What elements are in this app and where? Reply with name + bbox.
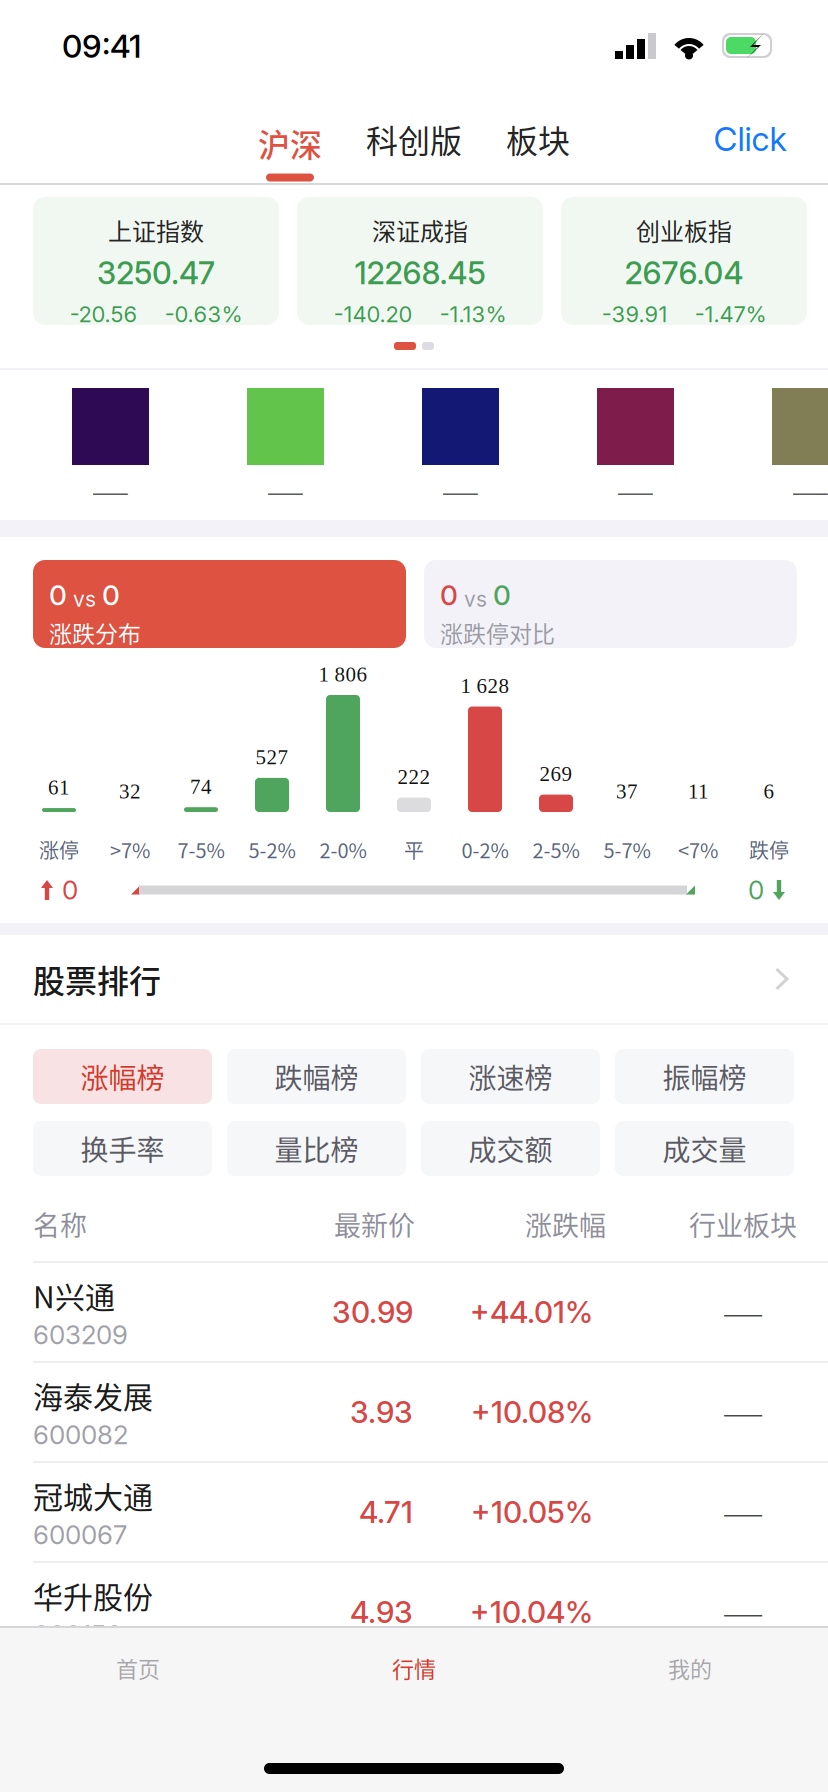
button[interactable]: 成交量	[615, 1121, 794, 1176]
staticText: ——	[442, 475, 479, 507]
staticText: 1 628	[460, 674, 509, 698]
staticText: +10.08%	[471, 1394, 593, 1430]
staticText: 涨速榜	[468, 1056, 552, 1097]
button[interactable]: 振幅榜	[615, 1049, 794, 1104]
staticText: 创业板指	[636, 213, 732, 247]
staticText: -39.91	[601, 301, 667, 327]
staticText: +10.05%	[471, 1494, 593, 1530]
button[interactable]: 沪深	[228, 96, 352, 189]
staticText: 成交量	[662, 1128, 746, 1169]
staticText: 30.99	[332, 1294, 413, 1330]
staticText: 37	[616, 780, 638, 803]
staticText: ——	[792, 475, 828, 507]
staticText: 华升股份	[33, 1574, 153, 1617]
staticText: 沪深	[258, 120, 322, 166]
staticText: 09:41	[62, 27, 142, 65]
staticText: 冠城大通	[33, 1474, 153, 1517]
staticText: 2-5%	[532, 835, 579, 864]
button[interactable]: N兴通	[0, 1263, 828, 1363]
button[interactable]: 换手率	[33, 1121, 212, 1176]
button[interactable]: 行情	[276, 1628, 552, 1708]
staticText: 股票排行	[33, 956, 161, 1002]
staticText: -1.13%	[439, 301, 506, 327]
staticText: -1.47%	[694, 301, 766, 327]
staticText: -20.56	[69, 301, 137, 327]
staticText: ——	[723, 1395, 763, 1429]
staticText: >7%	[110, 835, 150, 864]
staticText: 2676.04	[624, 254, 743, 292]
staticText: ——	[92, 475, 129, 507]
button[interactable]: ——	[422, 388, 499, 507]
staticText: vs	[67, 586, 102, 612]
button[interactable]: ——	[772, 388, 828, 507]
button[interactable]: 成交额	[421, 1121, 600, 1176]
button[interactable]: 华升股份	[0, 1563, 828, 1663]
staticText: 0-2%	[461, 835, 508, 864]
button[interactable]: 涨速榜	[421, 1049, 600, 1104]
button[interactable]: 上证指数	[33, 197, 279, 325]
staticText: 平	[404, 835, 424, 864]
button[interactable]: 海泰发展	[0, 1363, 828, 1463]
staticText: 涨幅榜	[80, 1056, 164, 1097]
staticText: 换手率	[80, 1128, 164, 1169]
staticText: -0.63%	[164, 301, 242, 327]
staticText: 2-0%	[319, 835, 366, 864]
staticText: 0	[49, 578, 67, 612]
button[interactable]: ——	[597, 388, 674, 507]
button[interactable]: 涨幅榜	[33, 1049, 212, 1104]
button[interactable]: 科创版	[352, 92, 476, 194]
staticText: 深证成指	[372, 213, 468, 247]
staticText: 行业板块	[689, 1204, 797, 1244]
staticText: 12268.45	[354, 254, 485, 292]
staticText: 7-5%	[177, 835, 224, 864]
staticText: 量比榜	[274, 1128, 358, 1169]
staticText: 269	[539, 762, 572, 786]
staticText: 海泰发展	[33, 1374, 153, 1417]
staticText: 0	[62, 874, 78, 906]
staticText: ——	[723, 1595, 763, 1629]
staticText: 61	[48, 776, 70, 799]
staticText: 600082	[33, 1419, 128, 1450]
staticText: -140.20	[333, 301, 412, 327]
staticText: 4.93	[350, 1594, 413, 1630]
button[interactable]: 深证成指	[297, 197, 543, 325]
staticText: 名称	[33, 1204, 87, 1244]
button[interactable]: 我的	[552, 1628, 828, 1708]
button[interactable]: 创业板指	[561, 197, 807, 325]
button[interactable]: 量比榜	[227, 1121, 406, 1176]
button[interactable]: 0	[424, 560, 797, 648]
button[interactable]: 首页	[0, 1628, 276, 1708]
staticText: 603209	[33, 1319, 128, 1350]
staticText: 0	[493, 578, 511, 612]
button[interactable]: 股票排行	[0, 935, 828, 1023]
staticText: 527	[255, 746, 288, 769]
button[interactable]: ——	[72, 388, 149, 507]
button[interactable]: 0	[33, 560, 406, 648]
staticText: 振幅榜	[662, 1056, 746, 1097]
staticText: 成交额	[468, 1128, 552, 1169]
staticText: 3.93	[350, 1394, 413, 1430]
staticText: 4.71	[359, 1494, 413, 1530]
staticText: 涨跌幅	[525, 1204, 606, 1244]
staticText: 涨跌分布	[49, 616, 141, 649]
staticText: 涨跌停对比	[440, 616, 555, 649]
staticText: +10.04%	[470, 1594, 593, 1630]
button[interactable]: 板块	[476, 92, 600, 194]
staticText: 最新价	[334, 1204, 415, 1244]
staticText: 首页	[116, 1652, 160, 1684]
button[interactable]: ——	[247, 388, 324, 507]
staticText: 600156	[33, 1619, 122, 1650]
staticText: 5-7%	[603, 835, 650, 864]
button[interactable]: 跌幅榜	[227, 1049, 406, 1104]
staticText: 跌停	[749, 835, 789, 864]
staticText: 上证指数	[108, 213, 204, 247]
staticText: <7%	[678, 835, 718, 864]
staticText: vs	[458, 586, 493, 612]
staticText: 600067	[33, 1519, 127, 1550]
button[interactable]: Click	[693, 92, 807, 194]
staticText: 跌幅榜	[274, 1056, 358, 1097]
button[interactable]: 冠城大通	[0, 1463, 828, 1563]
staticText: +44.01%	[470, 1294, 593, 1330]
staticText: 涨停	[39, 835, 79, 864]
staticText: 3250.47	[97, 254, 215, 292]
